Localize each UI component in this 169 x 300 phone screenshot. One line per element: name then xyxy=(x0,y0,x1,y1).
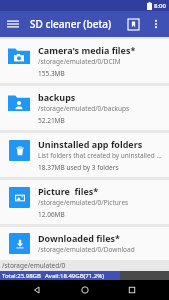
button[interactable]: Open navigation drawer xyxy=(0,11,26,37)
staticText: /storage/emulated/0/DCIM xyxy=(38,57,121,66)
staticText: Camera's media files* xyxy=(38,44,136,56)
button[interactable]: Uninstalled app folders xyxy=(0,133,169,177)
staticText: List folders that created by uninstalled… xyxy=(38,151,163,160)
button[interactable]: Home xyxy=(75,280,95,300)
staticText: Uninstalled app folders xyxy=(38,138,143,150)
staticText: /storage/emulated/0/backups xyxy=(38,104,130,113)
button[interactable]: backups xyxy=(0,86,169,130)
button[interactable]: Picture files* xyxy=(0,180,169,224)
staticText: /storage/emulated/0/Pictures xyxy=(38,198,129,207)
button[interactable]: Back xyxy=(27,280,47,300)
button[interactable]: More options xyxy=(145,13,167,35)
staticText: 12.06MB xyxy=(38,210,65,219)
staticText: SD cleaner (beta) xyxy=(30,17,121,31)
staticText: Total:25.98GB xyxy=(2,272,41,280)
button[interactable]: Downloaded files* xyxy=(0,227,169,260)
staticText: backups xyxy=(38,91,76,103)
staticText: 8:00 xyxy=(154,2,166,10)
button[interactable]: Bookmarks xyxy=(121,12,145,36)
staticText: /storage/emulated/0 xyxy=(2,261,66,270)
staticText: 155.3MB xyxy=(38,69,65,78)
button[interactable]: Recent apps xyxy=(122,280,142,300)
staticText: Avail:18.49GB(71.2%) xyxy=(45,272,105,280)
staticText: /storage/emulated/0/Download xyxy=(38,245,135,254)
staticText: 52.21MB xyxy=(38,116,65,125)
staticText: Picture files* xyxy=(38,185,99,197)
staticText: Downloaded files* xyxy=(38,232,120,244)
button[interactable]: Camera's media files* xyxy=(0,39,169,83)
staticText: 18.37MB used by 3 folders xyxy=(38,163,119,172)
